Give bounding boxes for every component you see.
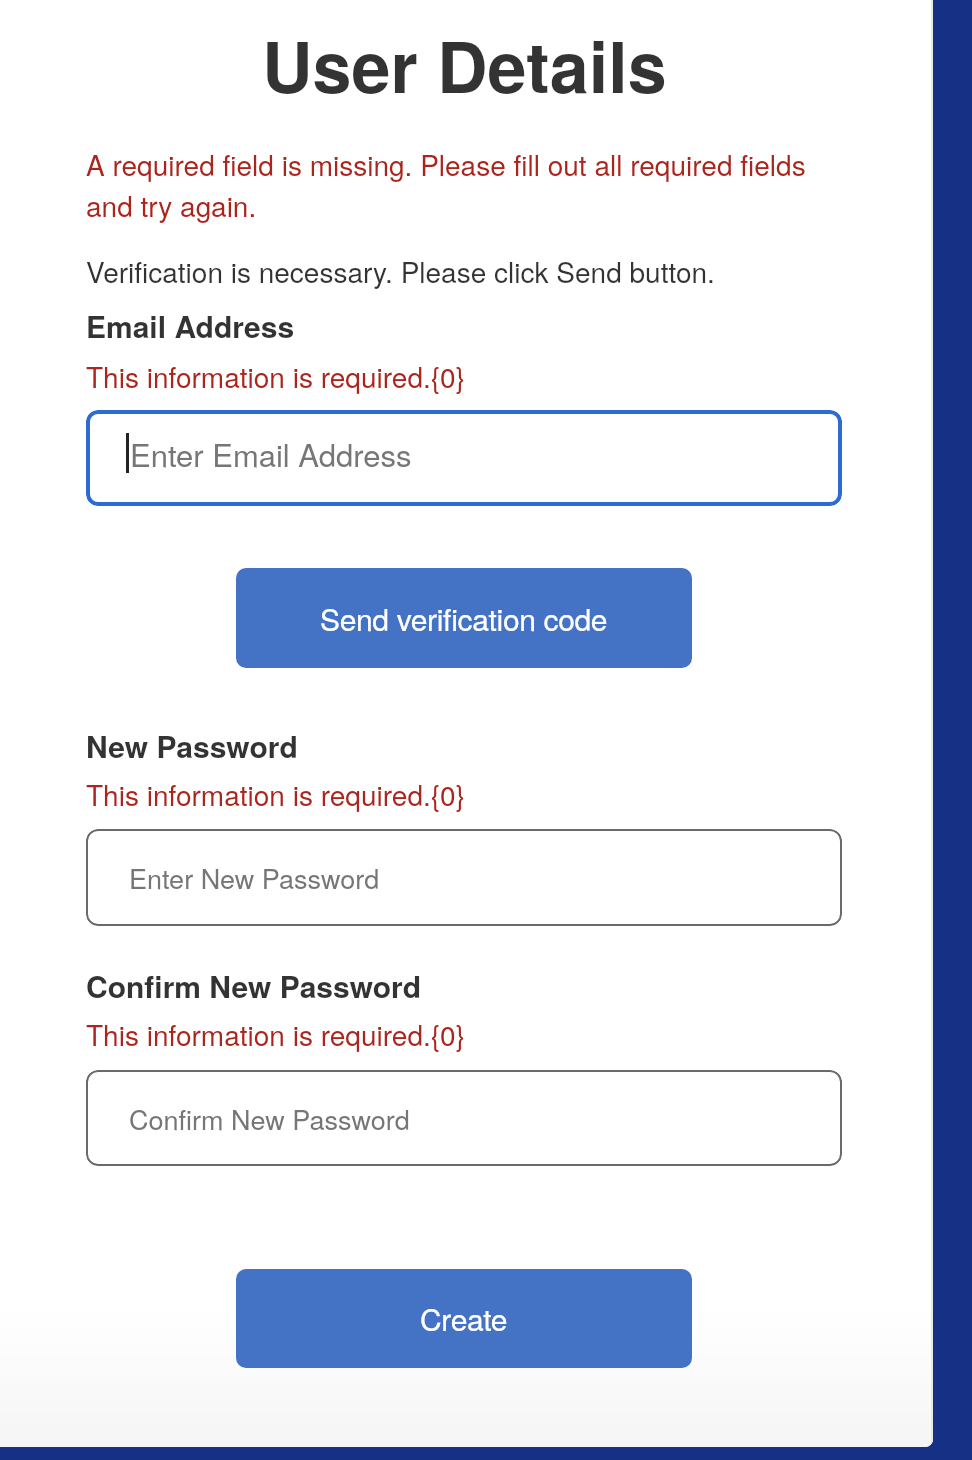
button[interactable]: Confirm New Password [86,1070,842,1166]
staticText: Create [420,1297,508,1340]
staticText: Verification is necessary. Please click … [86,251,715,291]
button[interactable]: Send verification code [236,568,692,668]
staticText: This information is required.{0} [86,1014,466,1054]
button[interactable]: Enter Email Address [86,410,842,506]
staticText: Email Address [86,304,295,347]
staticText: Send verification code [320,597,608,640]
staticText: Confirm New Password [86,964,422,1007]
staticText: New Password [86,724,298,767]
staticText: Enter New Password [129,858,380,897]
button[interactable]: Enter New Password [86,829,842,926]
staticText: Confirm New Password [129,1099,410,1138]
staticText: This information is required.{0} [86,774,466,814]
staticText: A required field is missing. Please fill… [86,144,806,225]
button[interactable]: Create [236,1269,692,1368]
staticText: This information is required.{0} [86,356,466,396]
staticText: Enter Email Address [130,431,412,475]
staticText: User Details [262,14,667,114]
